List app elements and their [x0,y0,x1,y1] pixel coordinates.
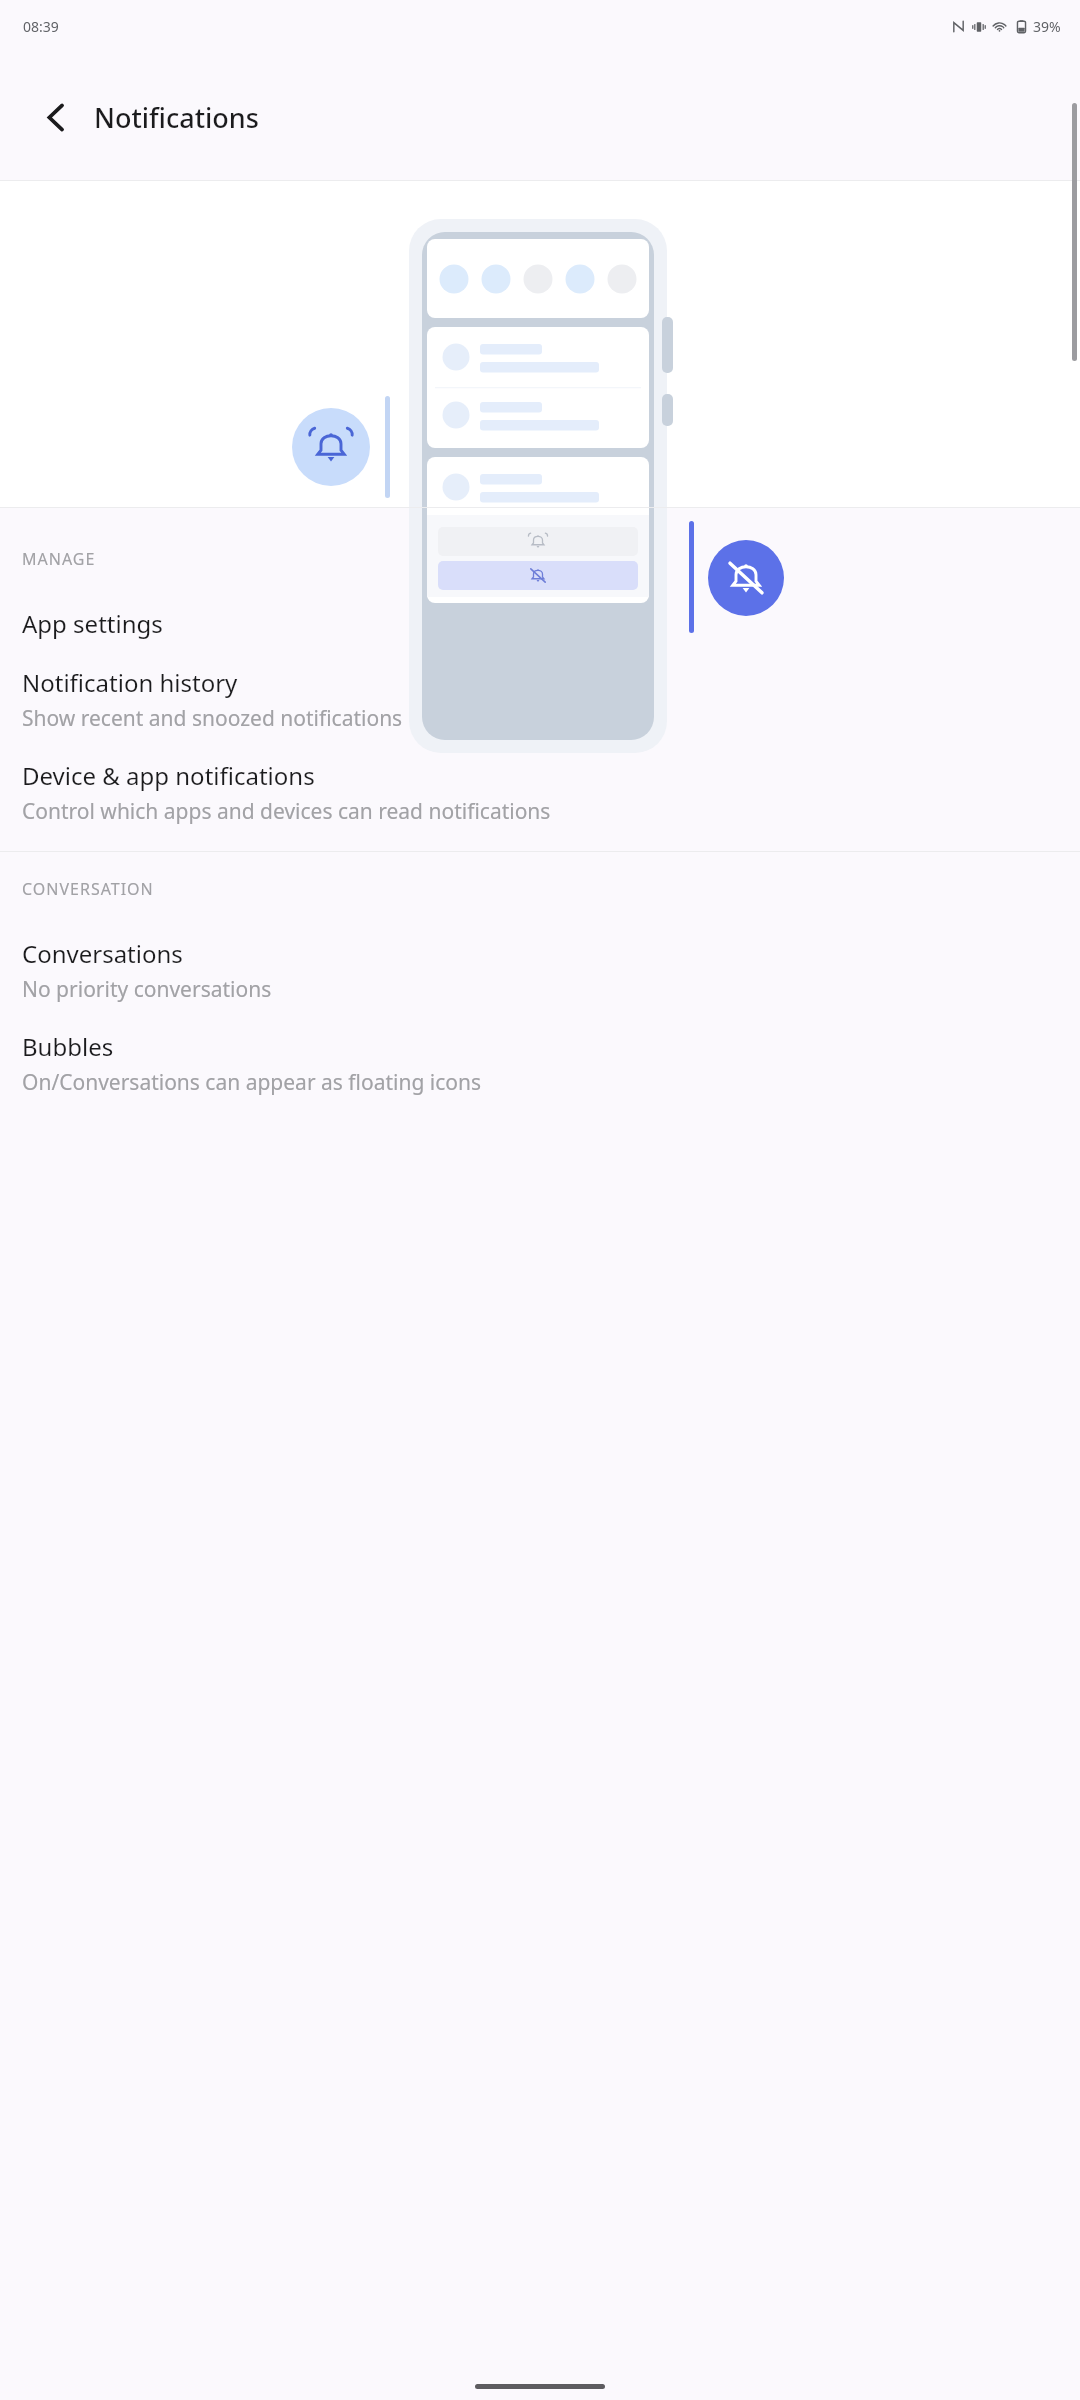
button[interactable]: Device & app notifications [0,746,1080,839]
staticText: On/Conversations can appear as floating … [22,1068,482,1097]
button[interactable]: Bubbles [0,1017,1080,1110]
staticText: 08:39 [23,17,59,36]
staticText: Conversations [22,937,183,970]
staticText: Device & app notifications [22,759,315,792]
staticText: 39% [1033,17,1061,36]
button[interactable]: Notification history [0,653,1080,746]
staticText: MANAGE [22,548,96,570]
staticText: Bubbles [22,1030,114,1063]
staticText: Show recent and snoozed notifications [22,704,403,733]
button[interactable]: App settings [0,594,1080,653]
staticText: Notifications [94,99,259,136]
staticText: CONVERSATION [22,878,154,900]
staticText: App settings [22,607,163,640]
staticText: No priority conversations [22,975,272,1004]
staticText: Control which apps and devices can read … [22,797,551,826]
staticText: Notification history [22,666,238,699]
button[interactable]: Back [25,86,87,148]
button[interactable]: Conversations [0,924,1080,1017]
